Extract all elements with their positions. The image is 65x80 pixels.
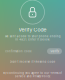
staticText: By continuing you agree to our Terms of … — [3, 71, 62, 78]
staticText: Verify Code — [18, 27, 46, 33]
staticText: We sent a code to your phone ending in 4… — [4, 35, 60, 41]
staticText: Confirmation Code — [5, 50, 32, 53]
staticText: Verify — [50, 50, 58, 53]
button[interactable]: Verify — [47, 48, 62, 54]
staticText: Didn't receive it? Resend code — [9, 60, 55, 63]
